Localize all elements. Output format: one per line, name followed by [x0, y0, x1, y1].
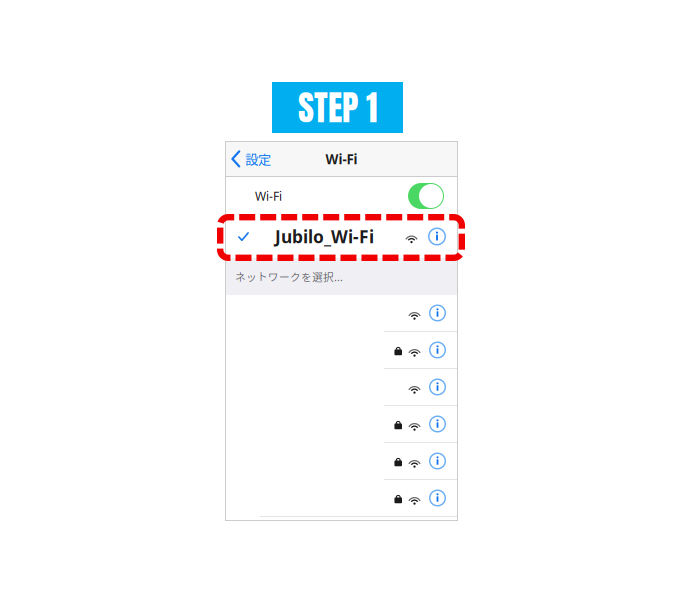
button[interactable]: 設定 — [226, 142, 271, 176]
staticText: 設定 — [245, 149, 271, 169]
button[interactable]: Wi-Fi network — [226, 406, 457, 442]
button[interactable]: Wi-Fi — [226, 177, 457, 215]
staticText: Wi-Fi — [255, 188, 282, 204]
button[interactable]: Wi-Fi network — [226, 480, 457, 516]
staticText: Wi-Fi — [325, 150, 357, 168]
button[interactable]: Jubilo_Wi-Fi — [226, 215, 457, 258]
staticText: Jubilo_Wi-Fi — [275, 225, 374, 248]
button[interactable]: Wi-Fi network — [226, 295, 457, 331]
button[interactable]: Wi-Fi network — [226, 332, 457, 368]
button[interactable]: Wi-Fi network — [226, 369, 457, 405]
staticText: ネットワークを選択... — [235, 269, 343, 284]
staticText: STEP 1 — [298, 81, 377, 134]
button[interactable]: Wi-Fi network — [226, 443, 457, 479]
